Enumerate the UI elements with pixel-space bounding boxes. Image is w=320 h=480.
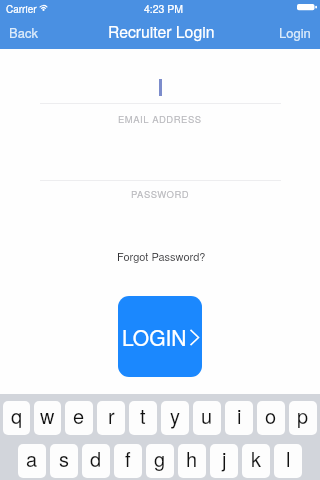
button[interactable]: t — [129, 401, 157, 435]
staticText: u — [201, 401, 213, 430]
button[interactable]: LOGIN — [118, 296, 202, 377]
staticText: s — [59, 444, 69, 473]
staticText: f — [125, 444, 131, 473]
button[interactable]: a — [18, 444, 46, 478]
button[interactable]: p — [289, 401, 317, 435]
button[interactable]: r — [97, 401, 125, 435]
staticText: o — [265, 401, 277, 430]
staticText: d — [90, 444, 102, 473]
button[interactable]: g — [146, 444, 174, 478]
button[interactable]: u — [193, 401, 221, 435]
button[interactable]: f — [114, 444, 142, 478]
staticText: j — [222, 444, 227, 473]
staticText: Back — [9, 23, 38, 42]
button[interactable]: o — [257, 401, 285, 435]
staticText: p — [297, 401, 309, 430]
button[interactable]: d — [82, 444, 110, 478]
staticText: EMAIL ADDRESS — [118, 112, 202, 126]
staticText: 4:23 PM — [144, 1, 184, 16]
staticText: k — [251, 444, 261, 473]
button[interactable]: i — [225, 401, 253, 435]
button[interactable]: q — [3, 401, 30, 435]
staticText: PASSWORD — [131, 187, 190, 201]
staticText: e — [73, 401, 85, 430]
staticText: q — [11, 401, 23, 430]
staticText: i — [237, 401, 242, 430]
button[interactable]: k — [242, 444, 270, 478]
staticText: LOGIN — [122, 322, 187, 352]
staticText: Carrier — [6, 2, 37, 16]
staticText: Forgot Password? — [117, 248, 206, 264]
button[interactable]: Login — [269, 18, 320, 47]
button[interactable]: y — [161, 401, 189, 435]
staticText: l — [286, 444, 291, 473]
staticText: a — [26, 444, 38, 473]
button[interactable]: s — [50, 444, 78, 478]
staticText: Recruiter Login — [108, 20, 215, 43]
button[interactable]: Email address field — [0, 74, 320, 101]
staticText: r — [108, 401, 115, 430]
staticText: Login — [279, 23, 311, 42]
staticText: t — [140, 401, 146, 430]
staticText: w — [40, 401, 55, 430]
button[interactable]: l — [274, 444, 302, 478]
button[interactable]: h — [178, 444, 206, 478]
staticText: y — [170, 401, 180, 430]
button[interactable]: j — [210, 444, 238, 478]
button[interactable]: w — [34, 401, 61, 435]
button[interactable]: Forgot Password? — [107, 245, 216, 267]
staticText: g — [154, 444, 166, 473]
staticText: h — [186, 444, 198, 473]
button[interactable]: e — [65, 401, 93, 435]
button[interactable]: Back — [0, 18, 47, 47]
